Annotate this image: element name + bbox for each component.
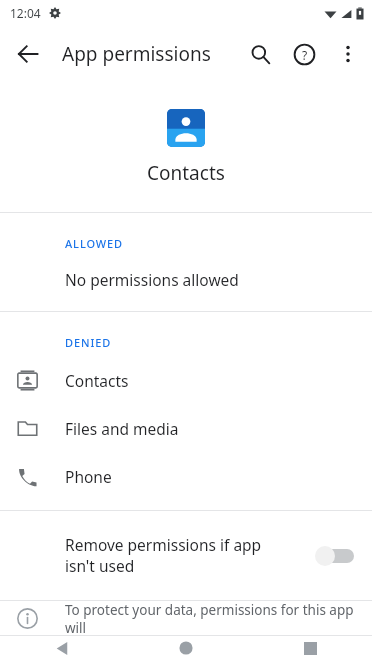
button[interactable]: Search: [238, 32, 282, 76]
staticText: Remove permissions if app isn't used: [65, 534, 290, 577]
button[interactable]: Remove permissions toggle: [313, 539, 355, 573]
staticText: DENIED: [65, 335, 112, 350]
staticText: No permissions allowed: [65, 269, 239, 290]
staticText: Phone: [65, 466, 112, 487]
button[interactable]: Files and media: [0, 404, 372, 452]
staticText: Files and media: [65, 418, 179, 439]
staticText: Contacts: [147, 160, 225, 186]
button[interactable]: Back: [4, 30, 52, 78]
button[interactable]: Recent apps: [248, 635, 372, 661]
staticText: App permissions: [62, 41, 238, 67]
button[interactable]: Back: [0, 635, 124, 661]
staticText: ALLOWED: [65, 236, 124, 251]
button[interactable]: Help: [282, 32, 326, 76]
staticText: To protect your data, permissions for th…: [65, 601, 372, 635]
staticText: ?: [302, 47, 308, 63]
button[interactable]: Remove permissions if app isn't used: [0, 511, 372, 600]
button[interactable]: More options: [326, 32, 370, 76]
button[interactable]: Contacts: [0, 356, 372, 404]
button[interactable]: Phone: [0, 452, 372, 500]
staticText: 12:04: [10, 5, 41, 21]
button[interactable]: Home: [124, 635, 248, 661]
staticText: Contacts: [65, 370, 129, 391]
